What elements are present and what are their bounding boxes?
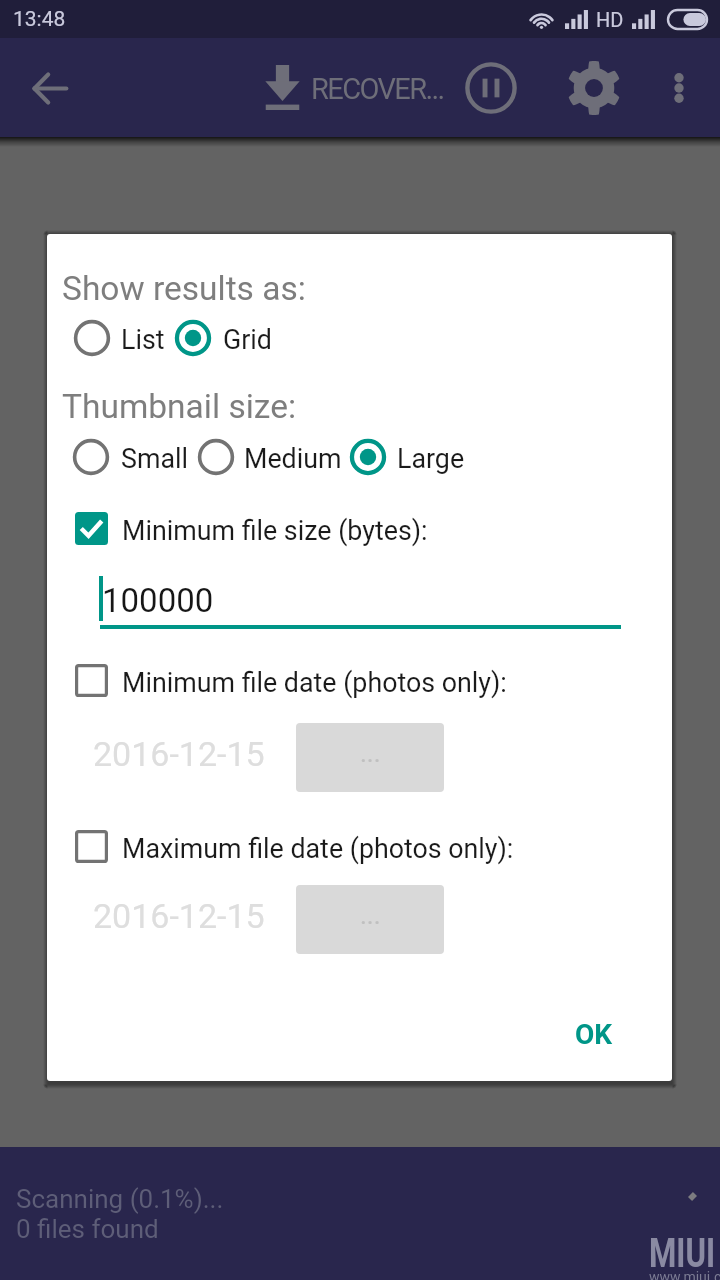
staticText: HD (596, 8, 624, 31)
button[interactable]: Pause (463, 60, 519, 116)
button[interactable]: Maximum file date (photos only): (67, 822, 459, 871)
staticText: OK (575, 1018, 613, 1051)
staticText: 13:48 (13, 7, 66, 32)
staticText: www.miui.com (649, 1269, 720, 1280)
staticText: Medium (244, 443, 342, 474)
staticText: 2016-12-15 (93, 734, 265, 774)
button[interactable]: More options (655, 64, 703, 112)
button[interactable]: OK (563, 1008, 625, 1061)
button[interactable]: Recover (263, 65, 302, 110)
staticText: Minimum file size (bytes): (122, 515, 428, 546)
button[interactable]: Small (67, 432, 135, 482)
staticText: List (121, 324, 165, 355)
staticText: Show results as: (62, 269, 306, 308)
staticText: 2016-12-15 (93, 896, 265, 936)
button[interactable]: Back (22, 60, 78, 116)
staticText: Scanning (0.1%)... (16, 1184, 224, 1214)
button[interactable]: RECOVER... (311, 72, 444, 106)
staticText: Maximum file date (photos only): (122, 833, 514, 864)
button[interactable]: Settings (565, 59, 623, 117)
button[interactable]: Minimum file size (bytes): (67, 504, 373, 553)
staticText: 100000 (102, 581, 214, 620)
button[interactable]: Medium (192, 432, 290, 482)
staticText: 0 files found (16, 1214, 159, 1244)
staticText: MIUI (649, 1230, 715, 1277)
staticText: ... (360, 900, 381, 930)
staticText: Minimum file date (photos only): (122, 667, 507, 698)
button[interactable]: Minimum file date (photos only): (67, 656, 452, 705)
button[interactable]: Large (344, 432, 412, 482)
staticText: Small (121, 443, 189, 474)
staticText: Grid (223, 324, 272, 355)
button[interactable]: List (68, 313, 112, 363)
staticText: Large (397, 443, 465, 474)
staticText: Thumbnail size: (62, 387, 297, 426)
button[interactable]: Grid (169, 313, 218, 363)
staticText: ... (360, 738, 381, 768)
